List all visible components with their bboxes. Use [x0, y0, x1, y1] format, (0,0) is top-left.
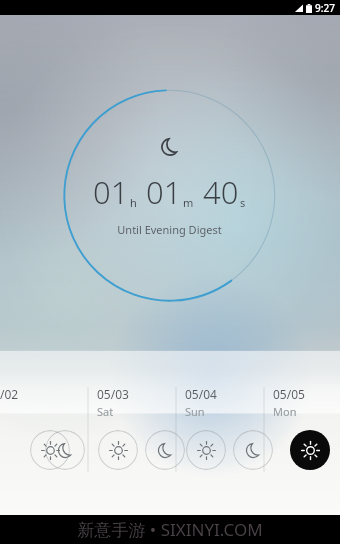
staticText: /02 [0, 386, 19, 402]
staticText: m [183, 195, 194, 210]
staticText: 05/03 [97, 386, 129, 402]
staticText: Sat [97, 404, 114, 419]
button[interactable]: Night forecast [145, 430, 185, 470]
staticText: Mon [273, 404, 297, 419]
staticText: s [240, 195, 246, 210]
staticText: Until Evening Digest [117, 222, 222, 237]
button[interactable]: Day forecast [186, 430, 226, 470]
button[interactable]: Day forecast [98, 430, 138, 470]
staticText: 05/04 [185, 386, 217, 402]
staticText: 01 [146, 171, 182, 213]
staticText: 01 [93, 171, 129, 213]
staticText: Sun [185, 404, 205, 419]
button[interactable]: Day forecast [30, 430, 70, 470]
staticText: 9:27 [315, 1, 335, 15]
button[interactable]: Night forecast [45, 430, 85, 470]
button[interactable]: Day forecast [290, 430, 330, 470]
staticText: h [130, 195, 137, 210]
staticText: 05/05 [273, 386, 305, 402]
staticText: 40 [203, 171, 239, 213]
button[interactable]: 01 [63, 89, 276, 302]
button[interactable]: Night forecast [233, 430, 273, 470]
staticText: 新意手游 • SIXINYI.COM [77, 518, 263, 541]
